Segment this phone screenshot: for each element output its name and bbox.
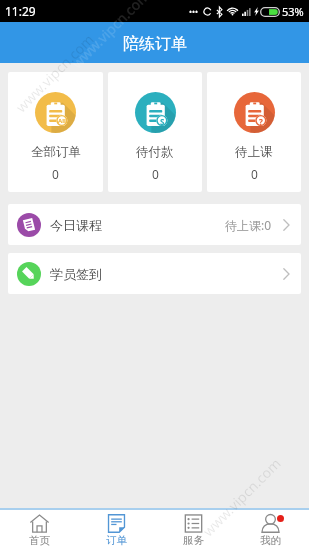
button[interactable]: 学员签到 bbox=[8, 253, 301, 294]
staticText: 0 bbox=[152, 166, 159, 182]
staticText: 待上课 bbox=[235, 144, 273, 160]
button[interactable]: Home bbox=[0, 510, 78, 550]
staticText: 我的 bbox=[260, 534, 281, 547]
staticText: www.vipcn.com bbox=[198, 454, 285, 540]
staticText: 0 bbox=[251, 166, 258, 182]
staticText: 0 bbox=[52, 166, 59, 182]
staticText: 53% bbox=[282, 4, 304, 19]
staticText: 首页 bbox=[29, 534, 50, 547]
staticText: All bbox=[58, 117, 66, 125]
staticText: S bbox=[160, 116, 165, 127]
staticText: 待付款 bbox=[136, 144, 174, 160]
button[interactable]: Profile bbox=[232, 510, 309, 550]
button[interactable]: All bbox=[8, 72, 103, 192]
button[interactable]: Services bbox=[155, 510, 232, 550]
staticText: www.vipcn.com bbox=[11, 30, 98, 116]
staticText: 学员签到 bbox=[50, 266, 102, 282]
staticText: 全部订单 bbox=[31, 144, 81, 160]
staticText: 今日课程 bbox=[50, 217, 102, 233]
staticText: 待上课:0 bbox=[225, 217, 272, 233]
staticText: 陪练订单 bbox=[123, 34, 187, 54]
staticText: ••• bbox=[189, 6, 199, 17]
button[interactable]: Orders bbox=[78, 510, 155, 550]
button[interactable]: ? bbox=[207, 72, 301, 192]
staticText: 服务 bbox=[183, 534, 204, 547]
button[interactable]: 今日课程 bbox=[8, 204, 301, 245]
staticText: 订单 bbox=[106, 534, 127, 547]
staticText: www.vipcn.com bbox=[67, 0, 154, 72]
button[interactable]: S bbox=[108, 72, 202, 192]
staticText: ? bbox=[259, 116, 263, 127]
staticText: 11:29 bbox=[5, 3, 36, 19]
